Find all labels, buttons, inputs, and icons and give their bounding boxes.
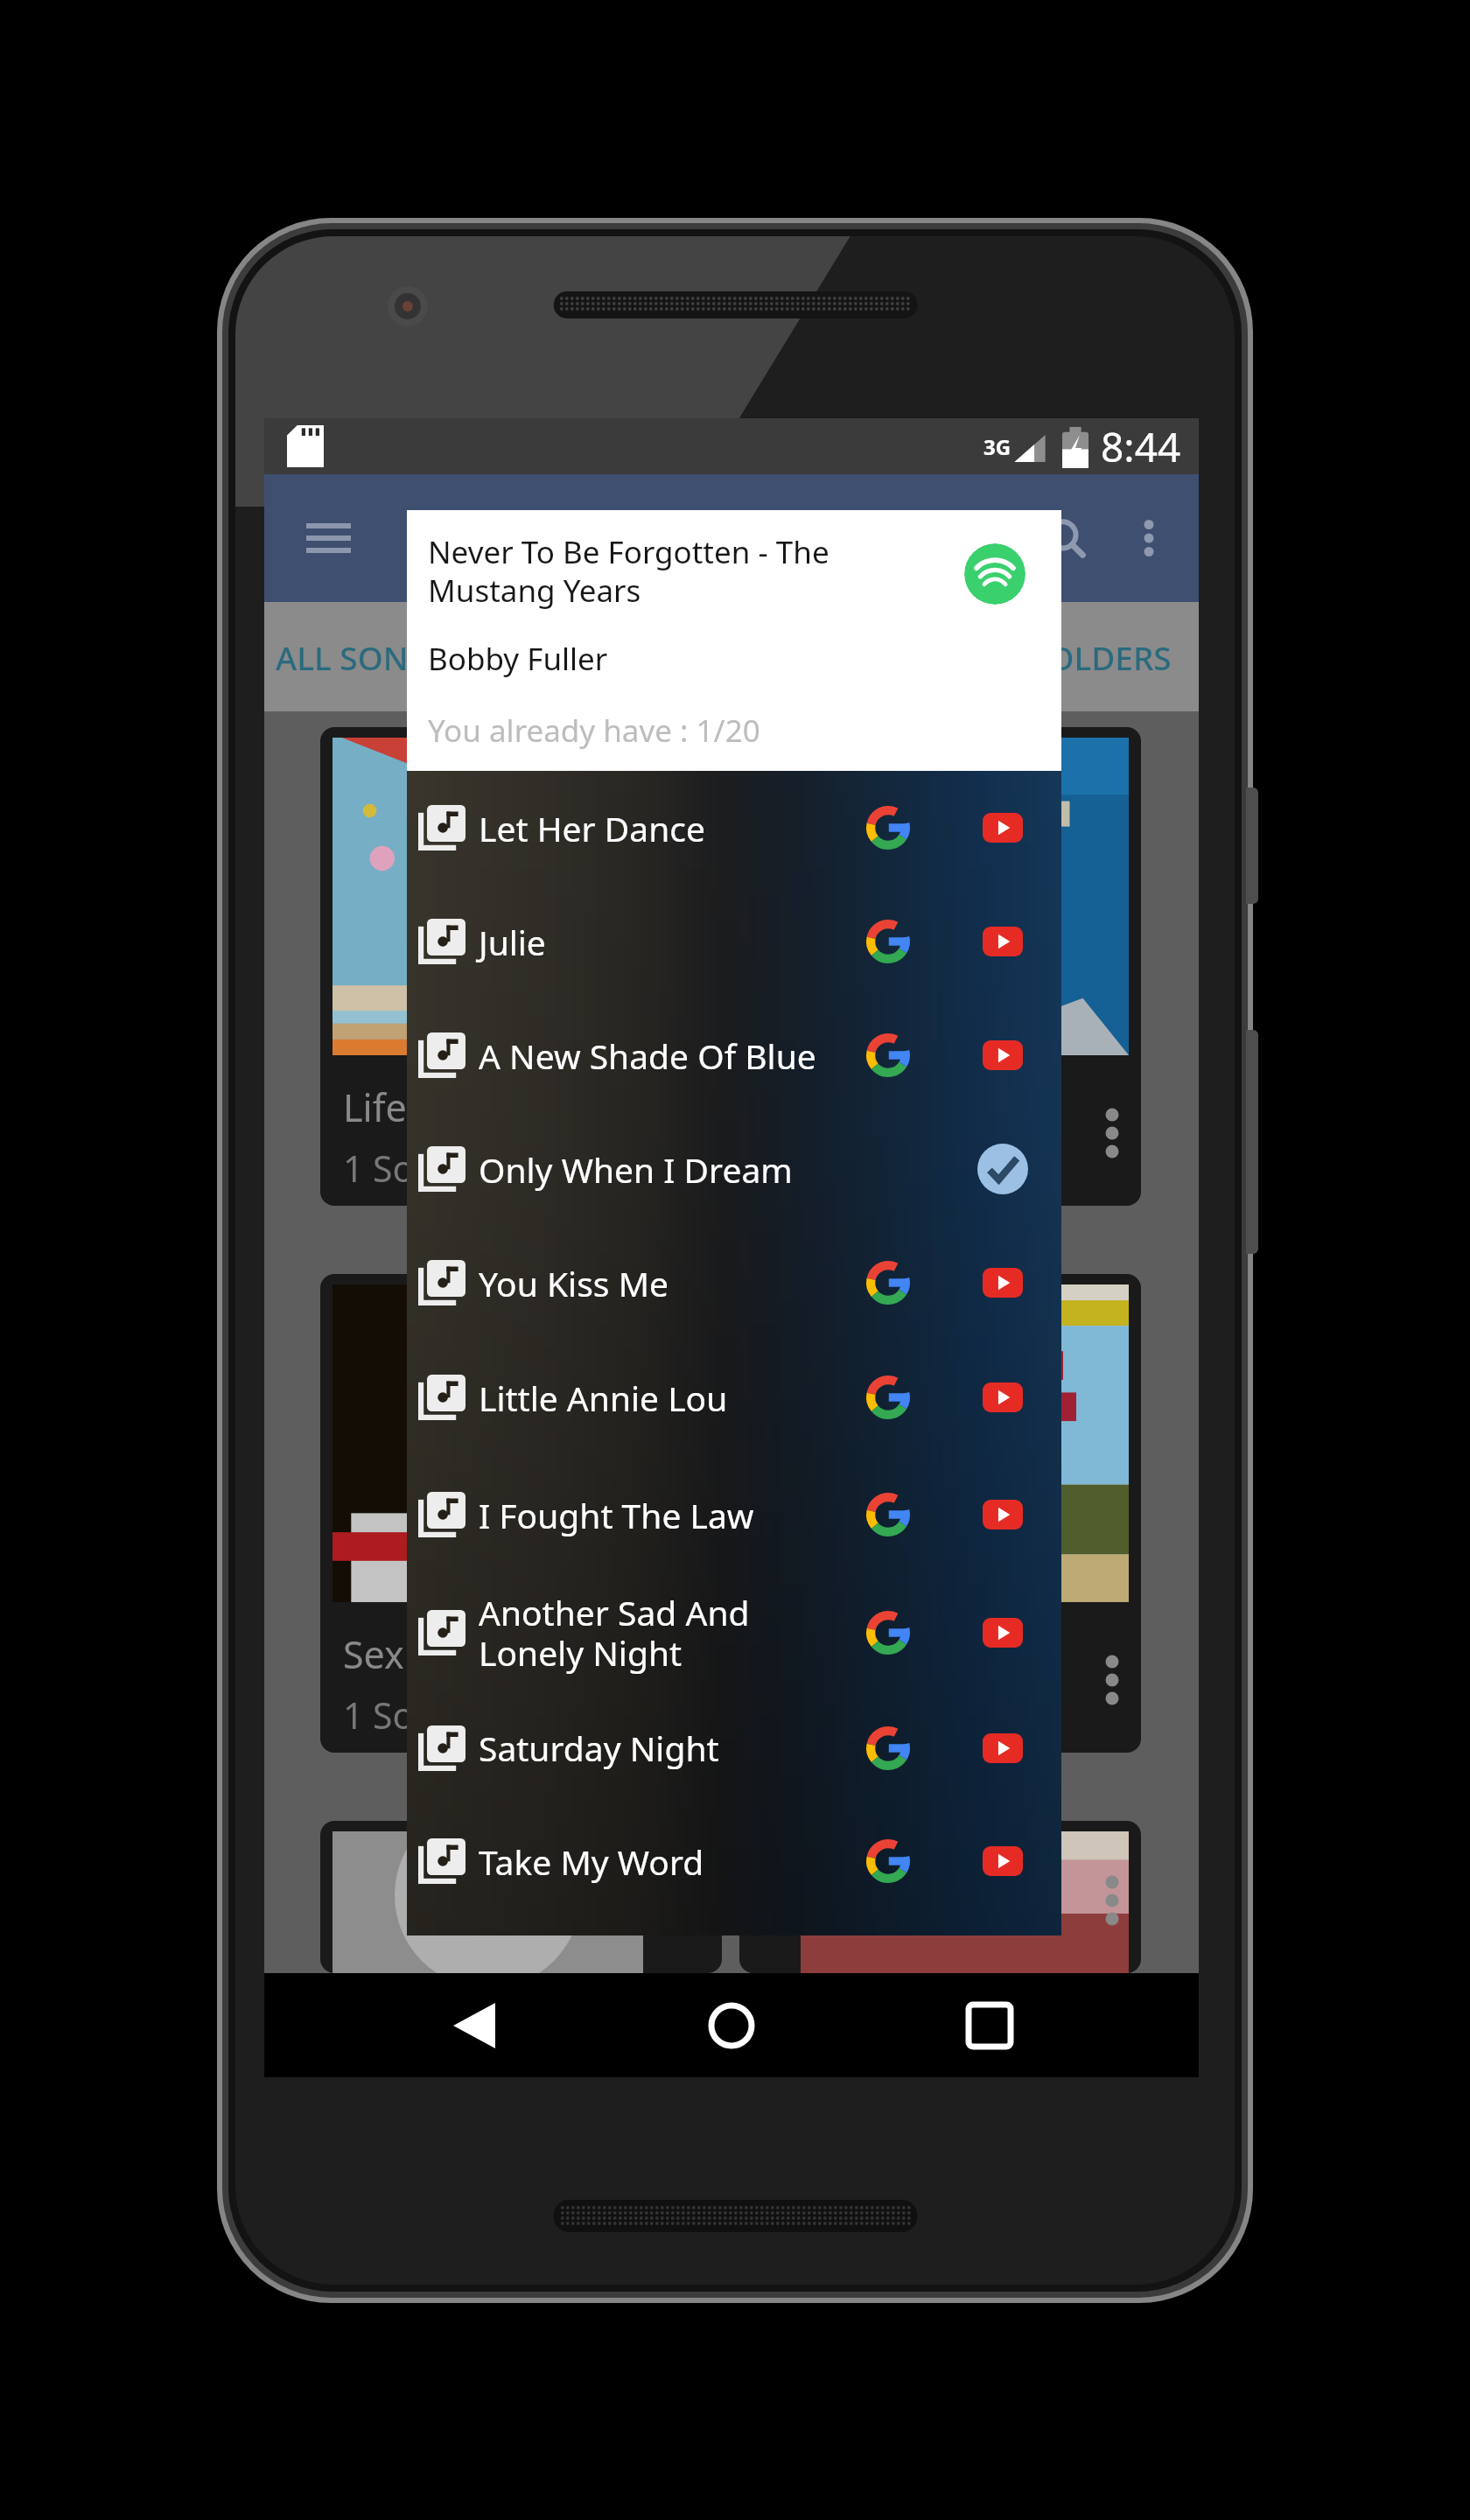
button[interactable]: Open navigation drawer xyxy=(288,498,368,578)
button[interactable]: Search on Google xyxy=(846,1241,930,1325)
staticText: You already have : 1/20 xyxy=(428,710,760,752)
button[interactable]: Life xyxy=(320,727,722,1206)
button[interactable]: Search on Google xyxy=(846,786,930,870)
staticText: 1 Song xyxy=(762,1690,878,1739)
button[interactable]: Another Sad And Lonely Night xyxy=(407,1574,1061,1691)
staticText: Let Her Dance xyxy=(479,805,820,851)
button[interactable] xyxy=(320,1821,722,1973)
staticText: 1 Song xyxy=(762,1144,878,1193)
button[interactable]: Open in Spotify xyxy=(964,543,1025,605)
button[interactable]: Play on YouTube xyxy=(961,786,1045,870)
button[interactable]: FOLDERS xyxy=(1004,602,1199,711)
staticText: FOLDERS xyxy=(1032,635,1172,679)
button[interactable]: A New Shade Of Blue xyxy=(407,998,1061,1112)
staticText: Shadows xyxy=(762,1628,920,1680)
button[interactable]: ALL SONGS xyxy=(264,602,461,711)
button[interactable]: Search on Google xyxy=(846,1706,930,1790)
button[interactable]: Play on YouTube xyxy=(961,1706,1045,1790)
staticText: 3G xyxy=(983,432,1011,461)
staticText: I Fought The Law xyxy=(479,1492,820,1538)
staticText: Never To Be Forgotten - The Mustang Year… xyxy=(428,531,876,611)
button[interactable]: Play on YouTube xyxy=(961,899,1045,983)
button[interactable]: Search xyxy=(1027,500,1104,577)
staticText: 8:44 xyxy=(1101,419,1181,474)
button[interactable]: Search on Google xyxy=(846,899,930,983)
staticText: Another Sad And Lonely Night xyxy=(479,1589,820,1676)
staticText: Life xyxy=(343,1081,407,1133)
button[interactable]: Play on YouTube xyxy=(961,1819,1045,1903)
staticText: Saturday Night xyxy=(479,1725,820,1771)
button[interactable]: Home xyxy=(683,1977,780,2074)
button[interactable]: Recent apps xyxy=(941,1977,1038,2074)
button[interactable]: Selected xyxy=(961,1127,1045,1211)
button[interactable]: Sex xyxy=(320,1274,722,1753)
button[interactable]: Search on Google xyxy=(846,1819,930,1903)
staticText: Never xyxy=(762,1081,867,1133)
staticText: Take My Word xyxy=(479,1838,820,1885)
staticText: Bobby Fuller xyxy=(428,638,608,680)
staticText: 1 Song xyxy=(343,1690,458,1739)
button[interactable]: Shadows xyxy=(739,1274,1141,1753)
button[interactable]: Julie xyxy=(407,885,1061,998)
staticText: Sex xyxy=(343,1628,404,1680)
staticText: ALL SONGS xyxy=(276,635,450,679)
button[interactable]: I Fought The Law xyxy=(407,1455,1061,1574)
staticText: Julie xyxy=(479,919,820,965)
button[interactable]: Saturday Night xyxy=(407,1691,1061,1804)
button[interactable]: Take My Word xyxy=(407,1804,1061,1918)
button[interactable]: Play on YouTube xyxy=(961,1473,1045,1557)
staticText: 1 Song xyxy=(343,1144,458,1193)
button[interactable]: Search on Google xyxy=(846,1591,930,1675)
button[interactable]: Play on YouTube xyxy=(961,1241,1045,1325)
staticText: Little Annie Lou xyxy=(479,1375,820,1421)
staticText: You Kiss Me xyxy=(479,1260,820,1306)
button[interactable]: Play on YouTube xyxy=(961,1355,1045,1439)
staticText: Only When I Dream xyxy=(479,1146,820,1193)
button[interactable]: Search on Google xyxy=(846,1473,930,1557)
button[interactable]: Only When I Dream xyxy=(407,1112,1061,1226)
button[interactable]: You Kiss Me xyxy=(407,1226,1061,1340)
button[interactable]: Search on Google xyxy=(846,1013,930,1097)
button[interactable]: More options xyxy=(1109,498,1189,578)
button[interactable]: Let Her Dance xyxy=(407,771,1061,885)
button[interactable]: Play on YouTube xyxy=(961,1013,1045,1097)
button[interactable]: Back xyxy=(426,1977,522,2074)
button[interactable]: Little Annie Lou xyxy=(407,1340,1061,1455)
button[interactable]: Search on Google xyxy=(846,1355,930,1439)
button[interactable]: Never xyxy=(739,727,1141,1206)
button[interactable] xyxy=(739,1821,1141,1973)
staticText: A New Shade Of Blue xyxy=(479,1032,820,1079)
button[interactable]: Play on YouTube xyxy=(961,1591,1045,1675)
